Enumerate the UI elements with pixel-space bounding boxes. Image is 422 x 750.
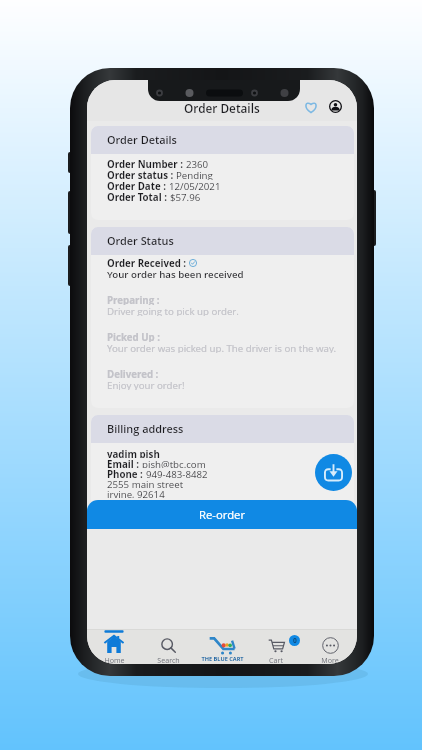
button[interactable]: Home (87, 630, 141, 664)
button[interactable]: THE BLUE CART (195, 630, 249, 664)
staticText: 2360 (186, 158, 209, 169)
button[interactable]: Re-order (87, 500, 357, 529)
staticText: irvine, 92614 (107, 488, 165, 498)
staticText: Search (157, 655, 180, 664)
staticText: Your order has been received (107, 268, 244, 279)
staticText: Your order was picked up. The driver is … (107, 342, 337, 353)
staticText: Home (104, 655, 125, 664)
staticText: THE BLUE CART (201, 655, 244, 663)
staticText: More (321, 655, 339, 664)
staticText: 12/05/2021 (169, 180, 221, 191)
staticText: Pending (176, 169, 213, 180)
staticText: Driver going to pick up order. (107, 305, 239, 316)
staticText: Phone : (107, 468, 146, 478)
staticText: Order Date : (107, 180, 169, 191)
staticText: Cart (269, 655, 283, 664)
staticText: Order Number : (107, 158, 186, 169)
staticText: 949-483-8482 (146, 468, 208, 478)
staticText: $57.96 (170, 191, 201, 202)
staticText: Preparing : (107, 294, 160, 305)
button[interactable]: Account (326, 97, 345, 116)
button[interactable]: Favorites (301, 97, 320, 116)
staticText: Picked Up : (107, 331, 160, 342)
button[interactable]: Search (141, 630, 195, 664)
button[interactable]: Download invoice (315, 454, 352, 491)
staticText: Re-order (199, 507, 246, 522)
button[interactable]: More (303, 630, 357, 664)
staticText: Order status : (107, 169, 176, 180)
staticText: Email : (107, 458, 142, 468)
staticText: Order Status (107, 233, 174, 248)
staticText: Billing address (107, 421, 184, 436)
staticText: 0 (293, 636, 297, 645)
staticText: Order Details (107, 132, 177, 147)
staticText: 2555 main street (107, 478, 184, 488)
staticText: vadim pish (107, 448, 160, 458)
staticText: Enjoy your order! (107, 379, 185, 390)
staticText: Order Total : (107, 191, 170, 202)
staticText: pish@tbc.com (142, 458, 206, 468)
button[interactable]: Cart (249, 630, 303, 664)
staticText: Delivered : (107, 368, 159, 379)
staticText: Order Details (184, 100, 260, 116)
staticText: Order Received : (107, 257, 189, 268)
